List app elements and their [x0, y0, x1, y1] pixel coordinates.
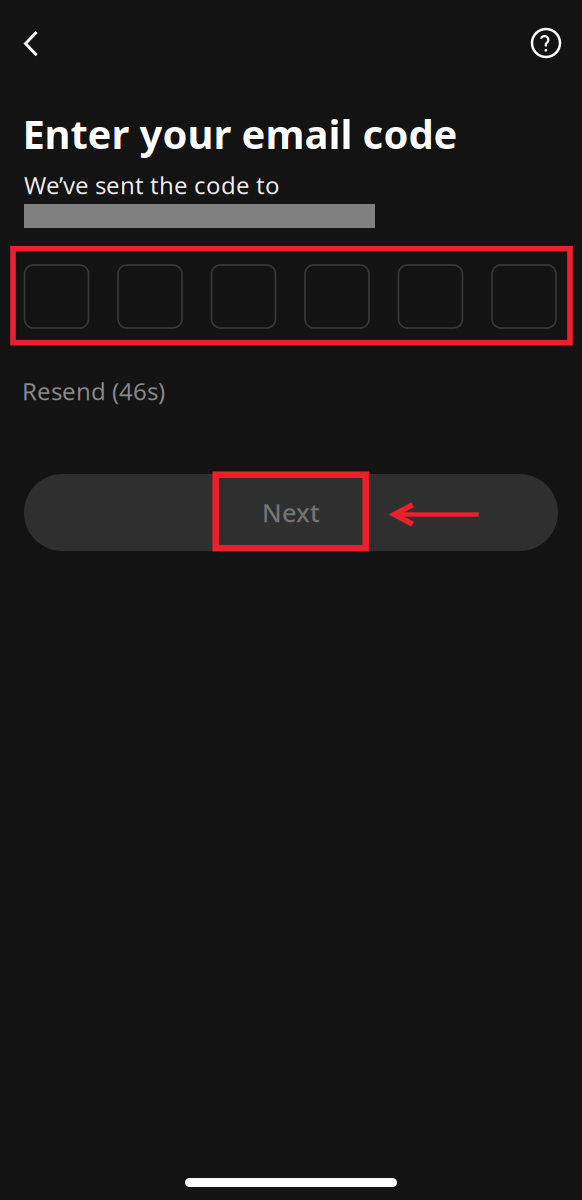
button[interactable]: Code digit 2 [118, 265, 182, 328]
button[interactable]: Resend (46s) [22, 376, 222, 406]
staticText: Resend (46s) [22, 375, 165, 407]
button[interactable]: Code digit 1 [24, 265, 88, 328]
button[interactable]: Code digit 3 [211, 265, 275, 328]
button[interactable]: Help [518, 15, 574, 71]
button[interactable]: Next [24, 474, 558, 551]
staticText: Enter your email code [22, 107, 457, 160]
button[interactable]: Back [3, 16, 59, 72]
staticText: We’ve sent the code to [24, 169, 280, 201]
button[interactable]: Code digit 4 [305, 265, 369, 328]
button[interactable]: Code digit 5 [398, 265, 462, 328]
staticText: Next [262, 496, 320, 529]
button[interactable]: Code digit 6 [492, 265, 556, 328]
